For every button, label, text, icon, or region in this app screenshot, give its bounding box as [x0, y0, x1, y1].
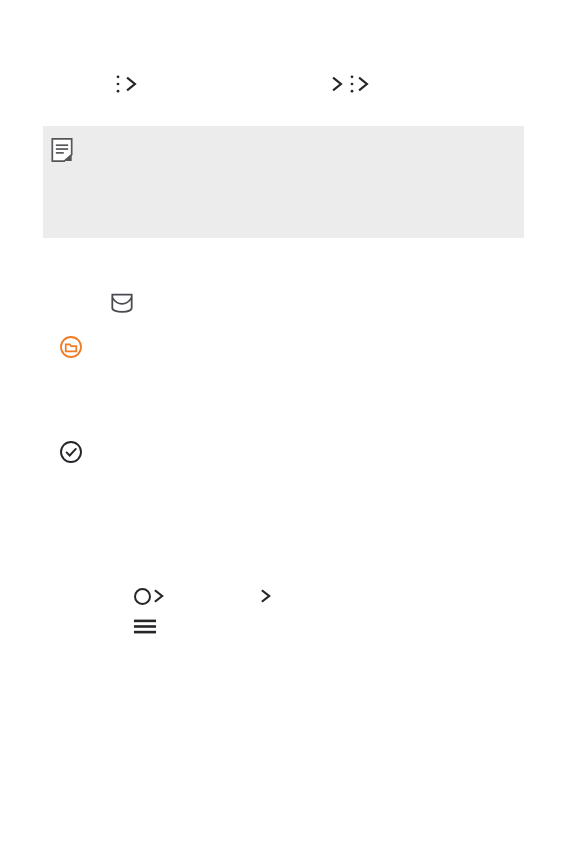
button[interactable] — [43, 126, 524, 238]
button[interactable]: Select — [134, 588, 151, 605]
button[interactable]: Expand — [124, 74, 138, 94]
button[interactable]: Next — [356, 74, 370, 94]
button[interactable]: Open — [152, 587, 165, 605]
button[interactable]: Overflow menu — [348, 74, 356, 94]
button[interactable]: More options — [114, 74, 122, 94]
button[interactable]: Folder — [60, 336, 82, 358]
button[interactable]: Done — [60, 441, 82, 463]
button[interactable]: Menu — [133, 618, 157, 635]
button[interactable]: Previous — [330, 74, 344, 94]
button[interactable]: Forward — [259, 587, 272, 605]
button[interactable]: Inbox — [111, 293, 133, 314]
button[interactable]: Note — [51, 138, 73, 162]
